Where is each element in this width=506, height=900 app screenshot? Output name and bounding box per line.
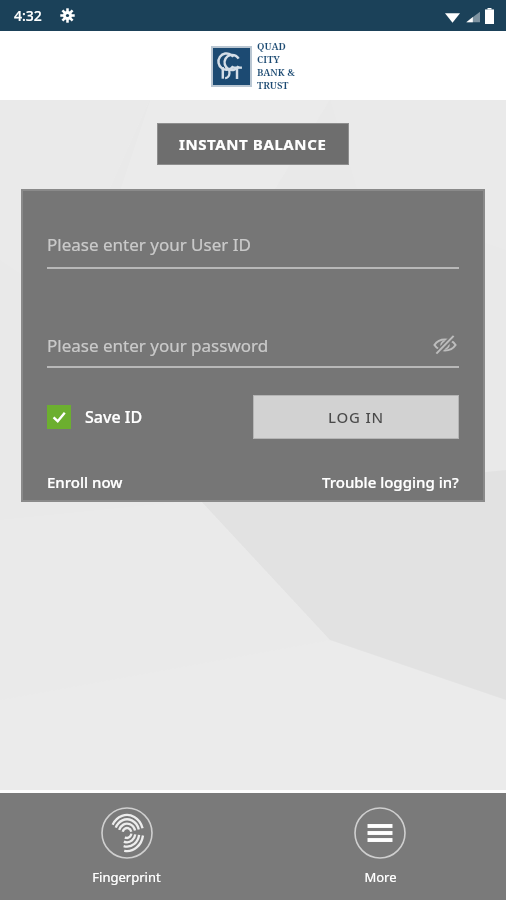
button[interactable]: Save ID bbox=[47, 405, 143, 429]
staticText: Enroll now bbox=[47, 472, 123, 492]
staticText: QUAD bbox=[257, 40, 286, 53]
button[interactable]: Show password bbox=[431, 331, 459, 359]
button[interactable]: Please enter your password bbox=[47, 334, 431, 357]
staticText: BANK & bbox=[257, 66, 295, 79]
staticText: LOG IN bbox=[328, 407, 385, 427]
staticText: Trouble logging in? bbox=[322, 472, 459, 492]
button[interactable]: Fingerprint bbox=[0, 793, 253, 900]
staticText: CITY bbox=[257, 53, 280, 66]
button[interactable]: LOG IN bbox=[254, 396, 458, 438]
staticText: TRUST bbox=[257, 79, 289, 92]
button[interactable]: Enroll now bbox=[47, 472, 123, 492]
staticText: Save ID bbox=[85, 406, 143, 428]
staticText: 4:32 bbox=[14, 6, 42, 25]
button[interactable]: INSTANT BALANCE bbox=[158, 124, 348, 164]
staticText: Fingerprint bbox=[92, 868, 161, 886]
button[interactable]: Please enter your User ID bbox=[47, 233, 459, 269]
button[interactable]: Trouble logging in? bbox=[322, 472, 459, 492]
staticText: Please enter your User ID bbox=[47, 233, 251, 256]
button[interactable]: More bbox=[253, 793, 506, 900]
staticText: INSTANT BALANCE bbox=[179, 134, 327, 154]
staticText: More bbox=[364, 868, 397, 886]
